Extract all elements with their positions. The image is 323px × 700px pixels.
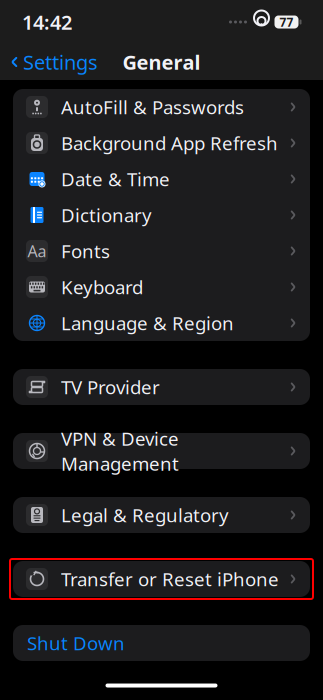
staticText: Date & Time (61, 167, 170, 191)
staticText: General (122, 49, 200, 75)
staticText: Aa (27, 240, 46, 262)
staticText: Transfer or Reset iPhone (61, 567, 279, 591)
staticText: AutoFill & Passwords (61, 95, 244, 119)
button[interactable]: AutoFill & Passwords (13, 89, 310, 125)
button[interactable]: Dictionary (13, 197, 310, 233)
staticText: Dictionary (61, 203, 152, 227)
staticText: 14:42 (22, 9, 72, 35)
button[interactable]: Aa (13, 233, 310, 269)
staticText: Background App Refresh (61, 131, 278, 155)
staticText: Shut Down (27, 631, 125, 655)
staticText: Keyboard (61, 275, 143, 299)
button[interactable]: Legal & Regulatory (13, 497, 310, 533)
staticText: 77 (279, 14, 293, 30)
button[interactable]: Date & Time (13, 161, 310, 197)
button[interactable]: Transfer or Reset iPhone (13, 561, 310, 597)
button[interactable]: Keyboard (13, 269, 310, 305)
staticText: Legal & Regulatory (61, 503, 229, 527)
button[interactable]: Settings (0, 43, 98, 81)
button[interactable]: VPN & Device Management (13, 433, 310, 469)
staticText: Language & Region (61, 311, 234, 335)
staticText: TV Provider (61, 375, 160, 399)
button[interactable]: Language & Region (13, 305, 310, 341)
staticText: Settings (23, 49, 98, 75)
button[interactable]: Background App Refresh (13, 125, 310, 161)
button[interactable]: Shut Down (13, 625, 310, 661)
staticText: VPN & Device Management (61, 426, 179, 476)
button[interactable]: TV Provider (13, 369, 310, 405)
staticText: Fonts (61, 239, 110, 263)
